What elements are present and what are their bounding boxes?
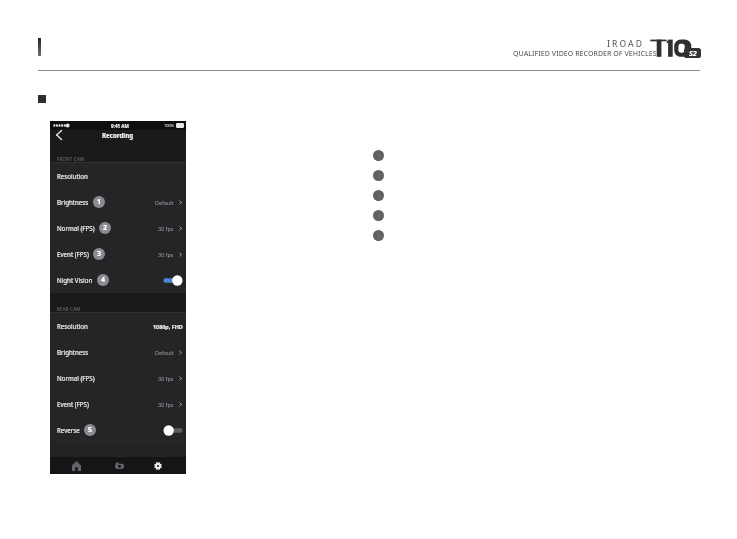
button[interactable]: Event (FPS) (50, 241, 186, 267)
button[interactable]: Brightness (50, 189, 186, 215)
staticText: Default (155, 199, 174, 206)
button[interactable]: Event (FPS) (50, 391, 186, 417)
staticText: 3 (97, 249, 102, 259)
staticText: 1080p, FHD (153, 323, 183, 330)
staticText: 3 (377, 191, 381, 200)
staticText: 2 (103, 223, 108, 233)
button[interactable]: Camera (100, 457, 139, 474)
staticText: Normal (FPS) (57, 224, 95, 232)
button[interactable]: Normal (FPS) (50, 215, 186, 241)
staticText: 30 fps (158, 401, 174, 408)
staticText: 1 (97, 197, 102, 207)
button[interactable]: Resolution (50, 313, 186, 339)
staticText: 2 (377, 171, 381, 180)
staticText: Event (FPS) (57, 250, 89, 258)
staticText: Recording (102, 131, 134, 139)
staticText: 30 fps (158, 375, 174, 382)
button[interactable]: Reverse (50, 417, 186, 443)
staticText: Event (FPS) (57, 400, 89, 408)
staticText: S2 (689, 48, 697, 58)
staticText: 5 (377, 231, 381, 240)
button[interactable]: Night Vision (50, 267, 186, 293)
staticText: 4 (377, 211, 381, 220)
button[interactable]: Home (53, 457, 100, 474)
staticText: Resolution (57, 172, 88, 180)
staticText: 4 (101, 275, 106, 285)
staticText: Default (155, 349, 174, 356)
staticText: REAR CAM (57, 306, 81, 312)
staticText: Brightness (57, 348, 89, 356)
staticText: Brightness (57, 198, 89, 206)
button[interactable]: Back (52, 128, 65, 141)
staticText: 30 fps (158, 225, 174, 232)
staticText: QUALIFIED VIDEO RECORDER OF VEHICLES (513, 49, 657, 59)
button[interactable]: Brightness (50, 339, 186, 365)
staticText: Reverse (57, 426, 80, 434)
staticText: FRONT CAM (57, 156, 85, 162)
button[interactable]: Resolution (50, 163, 186, 189)
staticText: 100% (164, 123, 175, 128)
button[interactable]: Normal (FPS) (50, 365, 186, 391)
button[interactable]: Settings (139, 457, 176, 474)
staticText: 9:41 AM (111, 123, 129, 129)
staticText: Night Vision (57, 276, 93, 284)
staticText: 1 (377, 151, 381, 160)
staticText: Resolution (57, 322, 88, 330)
staticText: 30 fps (158, 251, 174, 258)
staticText: Normal (FPS) (57, 374, 95, 382)
staticText: IROAD (607, 38, 644, 50)
staticText: 5 (88, 425, 93, 435)
